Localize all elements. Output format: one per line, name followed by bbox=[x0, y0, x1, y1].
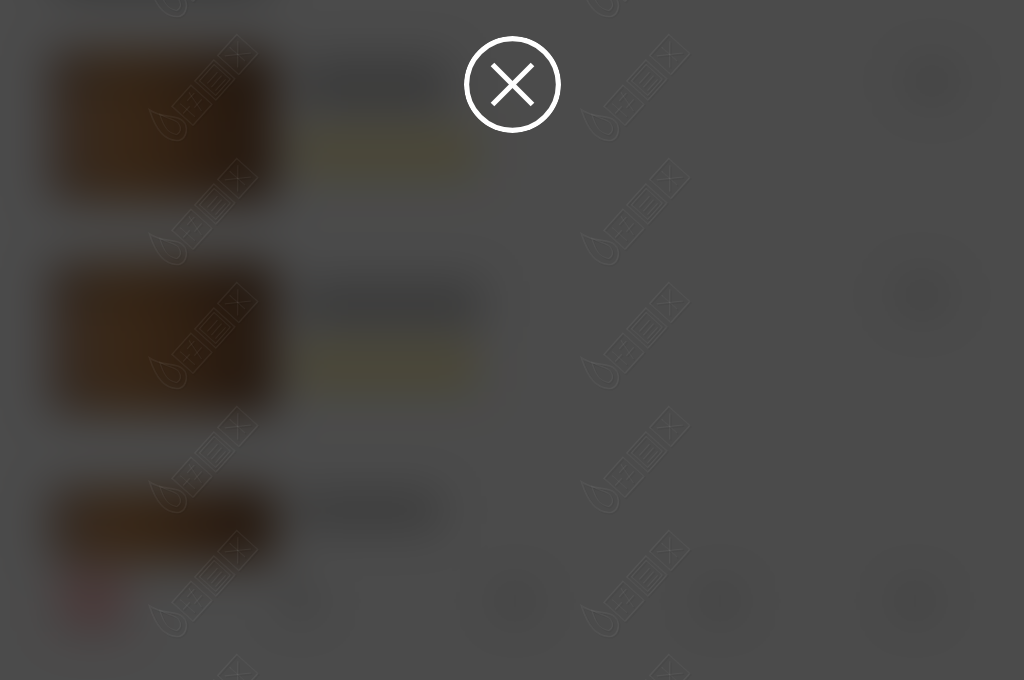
button[interactable]: Close bbox=[464, 36, 561, 133]
